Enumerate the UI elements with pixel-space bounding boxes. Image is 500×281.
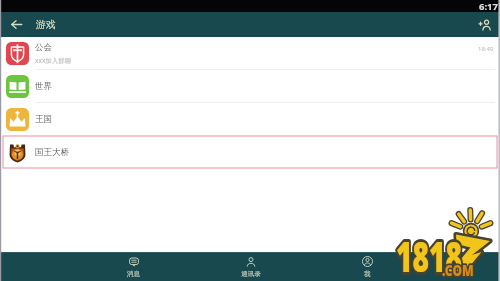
staticText: 1818 <box>396 226 462 281</box>
button[interactable]: 通讯录 <box>192 253 309 281</box>
staticText: 6:17 <box>479 0 498 12</box>
button[interactable]: 王国 <box>0 103 500 135</box>
staticText: 公会 <box>35 42 52 53</box>
staticText: 消息 <box>127 270 140 278</box>
button[interactable]: Add member <box>470 12 500 37</box>
staticText: 我 <box>364 270 371 278</box>
staticText: 18:49 <box>478 45 494 53</box>
button[interactable]: 我 <box>309 253 426 281</box>
button[interactable]: 世界 <box>0 70 500 102</box>
staticText: .COM <box>442 260 474 280</box>
staticText: 世界 <box>35 81 52 92</box>
button[interactable]: Back <box>0 12 32 37</box>
button[interactable]: 公会 <box>0 37 500 69</box>
staticText: xxx加入群聊 <box>35 56 72 65</box>
button[interactable]: 消息 <box>75 253 192 281</box>
staticText: 国王大桥 <box>35 147 69 158</box>
button[interactable]: 国王大桥 <box>0 135 500 169</box>
staticText: 游戏 <box>36 18 56 31</box>
staticText: .COM <box>442 260 474 280</box>
staticText: 1818 <box>396 226 462 281</box>
staticText: 通讯录 <box>241 270 261 278</box>
staticText: 王国 <box>35 114 52 125</box>
